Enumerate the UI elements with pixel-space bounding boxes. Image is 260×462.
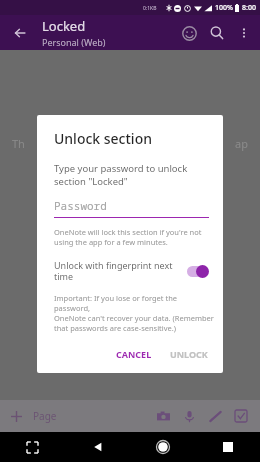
staticText: Unlock with fingerprint next time	[54, 259, 179, 283]
staticText: Unlock section	[54, 129, 152, 148]
staticText: 0:1KB	[143, 5, 157, 12]
staticText: Important: If you lose or forget the pas…	[54, 293, 215, 333]
staticText: Locked	[42, 17, 86, 35]
button[interactable]: UNLOCK	[163, 343, 215, 365]
staticText: CANCEL	[116, 348, 152, 360]
button[interactable]: Home	[130, 432, 195, 462]
staticText: Password	[54, 198, 107, 213]
staticText: Th	[12, 136, 25, 151]
button[interactable]: Back	[65, 432, 130, 462]
staticText: 100%	[215, 3, 233, 13]
button[interactable]: Screenshot	[0, 432, 65, 462]
button[interactable]: Unlock with fingerprint next time	[37, 259, 223, 283]
staticText: ap	[235, 136, 248, 151]
button[interactable]: Back	[6, 19, 34, 47]
staticText: OneNote will lock this section if you're…	[54, 227, 202, 247]
staticText: Page	[33, 409, 57, 423]
staticText: Personal (Web)	[42, 36, 106, 48]
button[interactable]: Recents	[195, 432, 260, 462]
button[interactable]: Camera	[150, 403, 176, 429]
staticText: 8:00	[242, 3, 256, 13]
button[interactable]: Password	[54, 198, 209, 218]
button[interactable]: Page	[0, 405, 65, 427]
button[interactable]: Stickers	[175, 19, 203, 47]
button[interactable]: To do	[228, 403, 254, 429]
button[interactable]: Draw	[202, 403, 228, 429]
button[interactable]: Search	[203, 19, 231, 47]
staticText: Type your password to unlock section "Lo…	[54, 162, 188, 188]
staticText: UNLOCK	[170, 348, 208, 360]
button[interactable]: More options	[231, 20, 257, 46]
button[interactable]: CANCEL	[109, 343, 159, 365]
button[interactable]: Audio	[176, 403, 202, 429]
